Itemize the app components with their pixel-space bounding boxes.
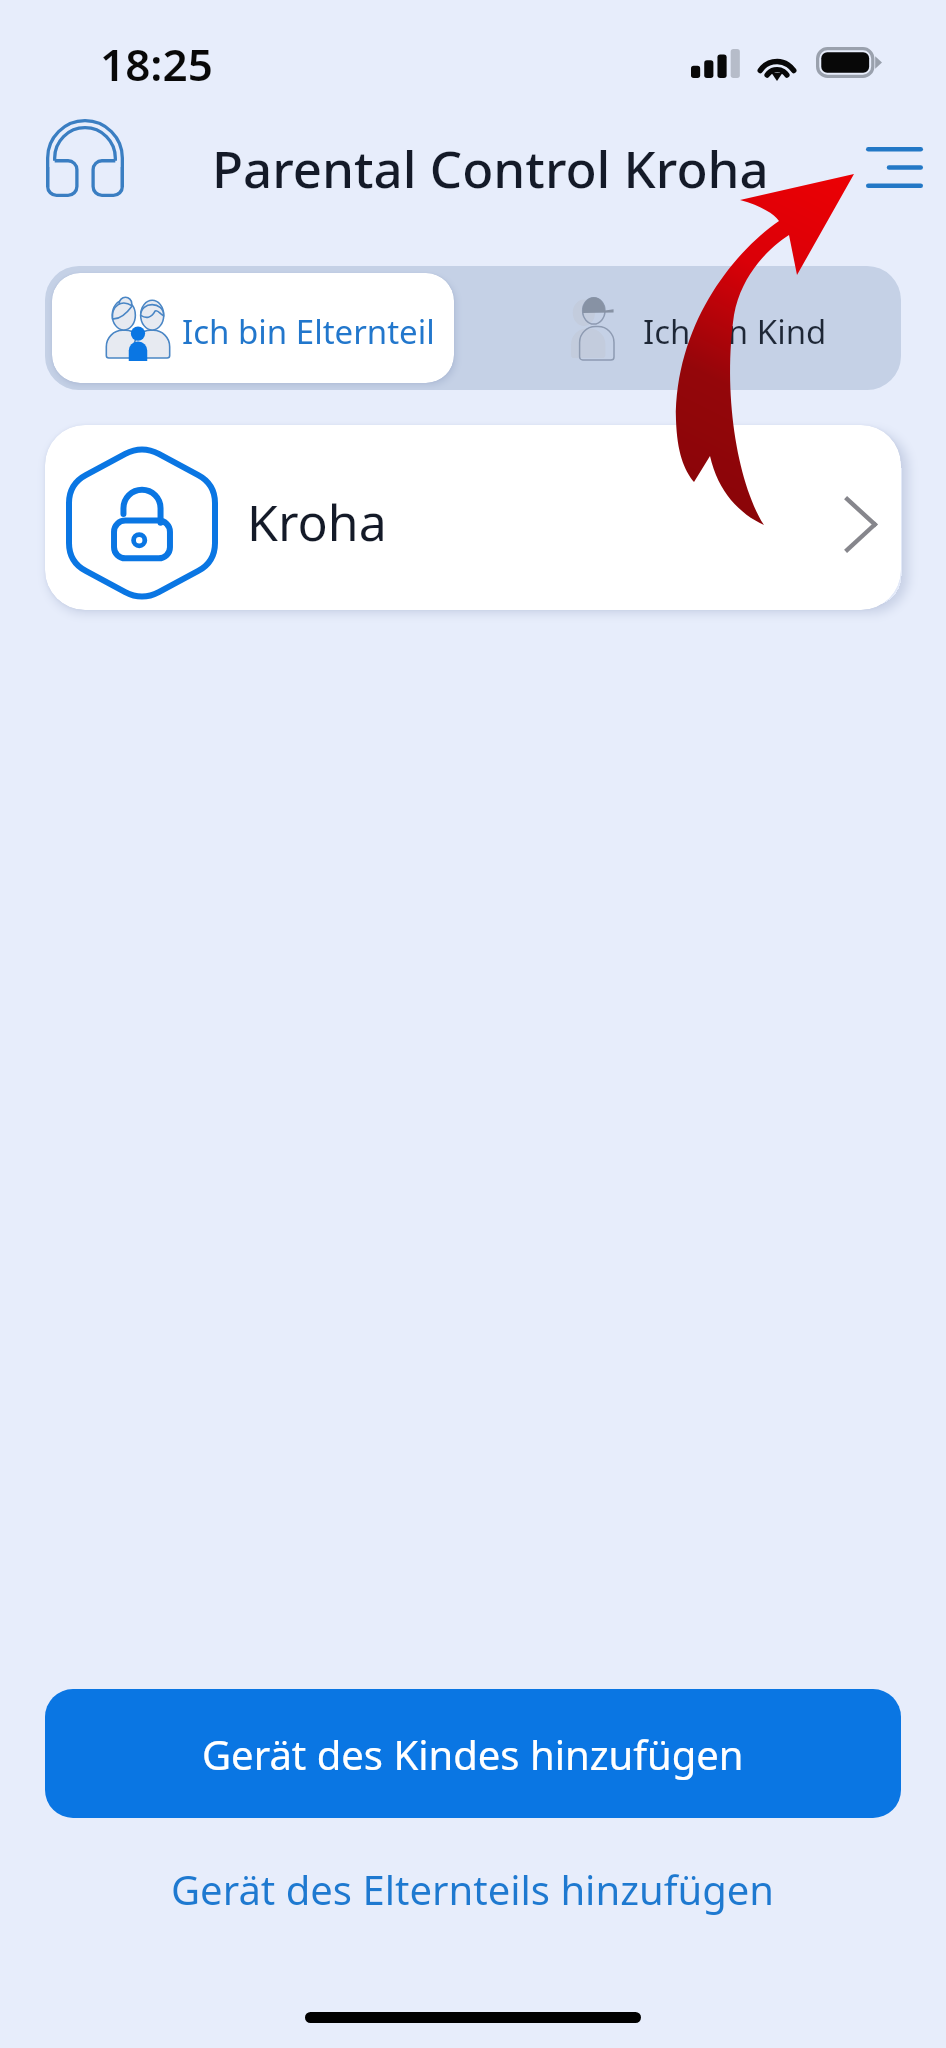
staticText: Gerät des Elternteils hinzufügen (171, 1862, 775, 1916)
staticText: Parental Control Kroha (212, 133, 769, 202)
button[interactable]: Gerät des Kindes hinzufügen (45, 1689, 901, 1818)
staticText: Ich bin Kind (643, 309, 827, 354)
button[interactable]: Kroha (45, 425, 901, 610)
staticText: 18:25 (100, 34, 213, 94)
button[interactable]: Ich bin Elternteil (52, 273, 454, 383)
button[interactable]: Gerät des Elternteils hinzufügen (0, 1858, 946, 1920)
button[interactable]: Ich bin Kind (461, 266, 901, 390)
staticText: Ich bin Elternteil (182, 309, 435, 354)
button[interactable]: Menu (846, 119, 942, 215)
staticText: Gerät des Kindes hinzufügen (202, 1727, 744, 1781)
staticText: Kroha (247, 488, 387, 556)
button[interactable]: Support (25, 102, 145, 214)
